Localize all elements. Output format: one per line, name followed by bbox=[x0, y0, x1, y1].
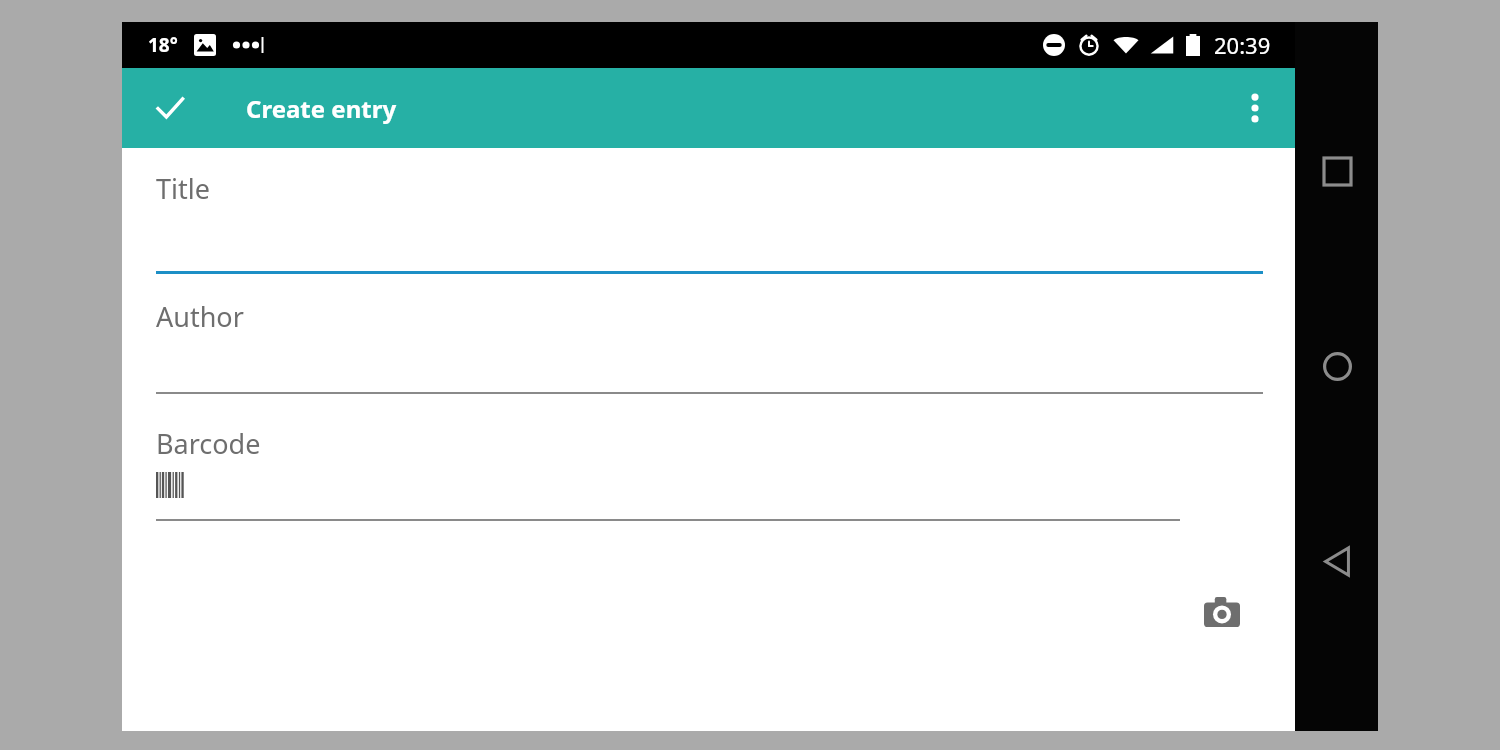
staticText: Create entry bbox=[246, 92, 397, 125]
button[interactable]: Scan barcode with camera bbox=[1192, 582, 1252, 642]
staticText: Title bbox=[156, 170, 210, 207]
staticText: 20:39 bbox=[1214, 30, 1271, 60]
staticText: Barcode bbox=[156, 425, 261, 462]
button[interactable]: Back bbox=[1306, 530, 1368, 592]
button[interactable]: Home bbox=[1306, 335, 1368, 397]
staticText: 18° bbox=[148, 32, 178, 58]
button[interactable]: Author bbox=[156, 292, 1263, 394]
button[interactable]: Recent apps bbox=[1306, 140, 1368, 202]
button[interactable]: Barcode bbox=[156, 419, 1180, 521]
button[interactable]: Title bbox=[156, 164, 1263, 274]
button[interactable]: More options bbox=[1227, 80, 1283, 136]
button[interactable]: Confirm bbox=[140, 78, 200, 138]
staticText: Author bbox=[156, 298, 244, 335]
